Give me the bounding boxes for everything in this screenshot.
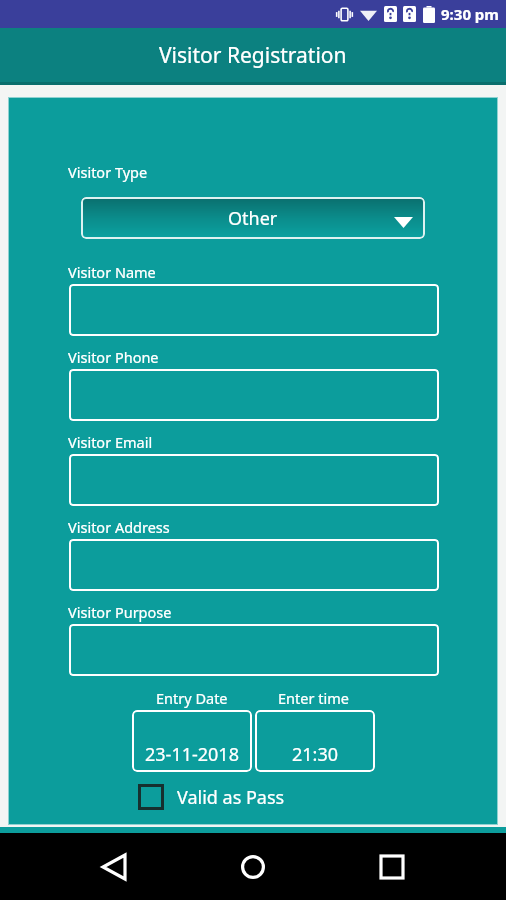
staticText: Visitor Name bbox=[68, 262, 156, 282]
staticText: Other bbox=[228, 206, 278, 231]
staticText: Visitor Registration bbox=[159, 41, 347, 70]
button[interactable]: Visitor Phone bbox=[69, 369, 439, 421]
staticText: 9:30 pm bbox=[441, 4, 499, 24]
staticText: Visitor Purpose bbox=[68, 602, 172, 622]
staticText: Enter time bbox=[278, 688, 349, 708]
button[interactable]: Visitor Address bbox=[69, 539, 439, 591]
staticText: Valid as Pass bbox=[177, 785, 285, 810]
staticText: Visitor Email bbox=[68, 432, 153, 452]
staticText: Visitor Type bbox=[68, 162, 148, 182]
button[interactable]: Other bbox=[81, 197, 425, 239]
button[interactable]: Visitor Purpose bbox=[69, 624, 439, 676]
button[interactable]: Back bbox=[90, 843, 138, 891]
staticText: 21:30 bbox=[292, 742, 339, 767]
staticText: 23-11-2018 bbox=[145, 742, 239, 767]
staticText: Visitor Phone bbox=[68, 347, 159, 367]
staticText: Visitor Address bbox=[68, 517, 170, 537]
button[interactable]: Valid as Pass bbox=[138, 780, 285, 814]
button[interactable]: Visitor Email bbox=[69, 454, 439, 506]
button[interactable]: Home bbox=[229, 843, 277, 891]
button[interactable]: Recent apps bbox=[368, 843, 416, 891]
button[interactable]: Visitor Name bbox=[69, 284, 439, 336]
staticText: Entry Date bbox=[156, 688, 228, 708]
button[interactable]: 21:30 bbox=[255, 710, 375, 772]
button[interactable]: 23-11-2018 bbox=[132, 710, 252, 772]
